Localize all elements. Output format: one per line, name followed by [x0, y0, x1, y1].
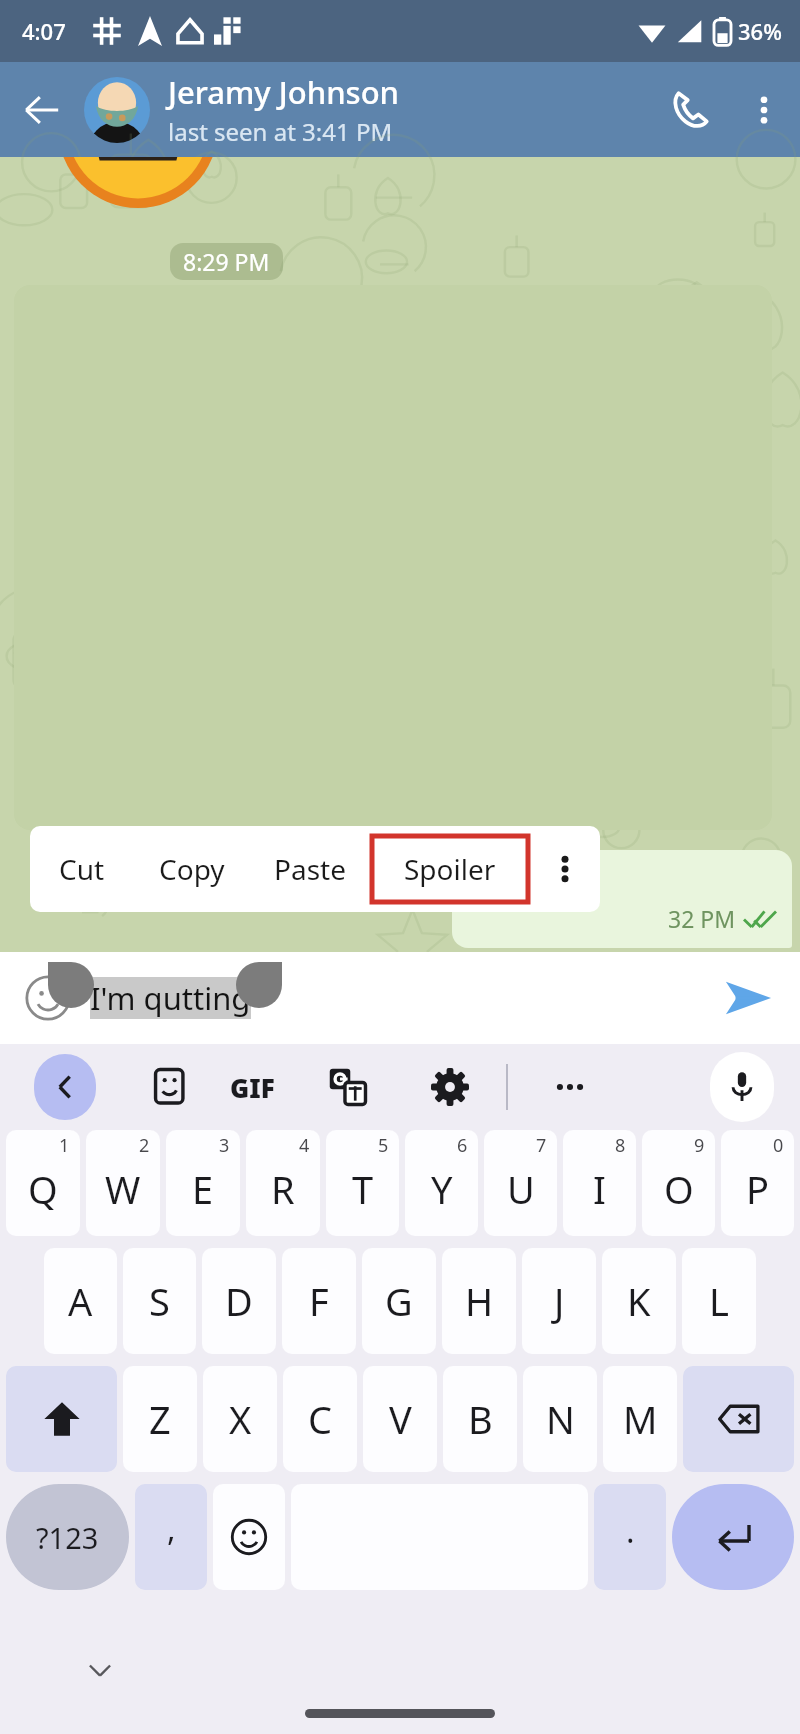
staticText: Jeramy Johnson	[168, 71, 400, 113]
button[interactable]: More	[530, 826, 600, 912]
staticText: 6	[457, 1133, 468, 1158]
staticText: Y	[431, 1163, 453, 1215]
staticText: O	[664, 1163, 694, 1215]
button[interactable]: Q	[6, 1130, 80, 1236]
staticText: L	[709, 1275, 729, 1327]
button[interactable]: Back	[34, 1054, 96, 1120]
button[interactable]: T	[326, 1130, 399, 1236]
button[interactable]: Emoji	[213, 1484, 285, 1590]
button[interactable]: Settings	[418, 1055, 482, 1119]
staticText: Copy	[159, 850, 225, 888]
staticText: Cut	[59, 850, 105, 888]
button[interactable]: G	[362, 1248, 436, 1354]
button[interactable]: D	[202, 1248, 276, 1354]
staticText: J	[554, 1275, 565, 1327]
button[interactable]: Emoji	[20, 970, 76, 1026]
staticText: Paste	[274, 850, 346, 888]
staticText: P	[746, 1163, 769, 1215]
button[interactable]: GIF	[220, 1055, 284, 1119]
staticText: W	[105, 1163, 141, 1215]
staticText: G	[385, 1275, 413, 1327]
button[interactable]: Back	[0, 62, 84, 157]
staticText: T	[352, 1163, 374, 1215]
staticText: M	[623, 1393, 658, 1445]
staticText: 5	[378, 1133, 389, 1158]
staticText: F	[309, 1275, 329, 1327]
staticText: U	[507, 1163, 535, 1215]
button[interactable]: Enter	[672, 1484, 794, 1590]
button[interactable]	[14, 285, 772, 830]
staticText: Q	[28, 1163, 58, 1215]
button[interactable]: Voice input	[710, 1052, 774, 1122]
button[interactable]: Copy	[134, 826, 250, 912]
button[interactable]: Cut	[30, 826, 134, 912]
button[interactable]: More options	[728, 62, 800, 157]
button[interactable]: Shift	[6, 1366, 117, 1472]
staticText: 4:07	[22, 16, 66, 46]
staticText: K	[627, 1275, 651, 1327]
staticText: 3	[219, 1133, 230, 1158]
button[interactable]: 32 PM	[452, 850, 792, 948]
staticText: GIF	[230, 1070, 275, 1105]
button[interactable]: F	[282, 1248, 356, 1354]
button[interactable]: Call	[652, 62, 728, 157]
button[interactable]: Profile photo	[84, 77, 150, 143]
button[interactable]: ,	[135, 1484, 207, 1590]
button[interactable]: Paste	[250, 826, 370, 912]
button[interactable]: K	[602, 1248, 676, 1354]
button[interactable]: More	[538, 1055, 602, 1119]
staticText: I'm qutting	[90, 977, 251, 1019]
staticText: 7	[536, 1133, 547, 1158]
button[interactable]: L	[682, 1248, 756, 1354]
staticText: ?123	[36, 1518, 99, 1557]
button[interactable]: S	[123, 1248, 196, 1354]
staticText: A	[68, 1275, 93, 1327]
button[interactable]: R	[246, 1130, 320, 1236]
button[interactable]: .	[594, 1484, 666, 1590]
button[interactable]: Spoiler	[370, 826, 530, 912]
button[interactable]: W	[86, 1130, 160, 1236]
button[interactable]: I	[563, 1130, 636, 1236]
button[interactable]: P	[721, 1130, 794, 1236]
staticText: Spoiler	[404, 850, 496, 888]
button[interactable]: Send	[716, 966, 780, 1030]
button[interactable]: V	[363, 1366, 437, 1472]
staticText: 32 PM	[668, 903, 736, 934]
button[interactable]: Backspace	[683, 1366, 794, 1472]
button[interactable]: U	[484, 1130, 557, 1236]
staticText: 0	[773, 1133, 784, 1158]
staticText: N	[546, 1393, 575, 1445]
button[interactable]: Stickers	[138, 1055, 202, 1119]
staticText: R	[271, 1163, 295, 1215]
button[interactable]: M	[603, 1366, 677, 1472]
staticText: 1	[59, 1133, 70, 1158]
staticText: C	[308, 1393, 333, 1445]
staticText: Z	[149, 1393, 171, 1445]
button[interactable]: H	[442, 1248, 516, 1354]
staticText: B	[468, 1393, 493, 1445]
button[interactable]: B	[443, 1366, 517, 1472]
button[interactable]: Z	[123, 1366, 197, 1472]
staticText: I	[593, 1163, 606, 1215]
staticText: 9	[694, 1133, 705, 1158]
button[interactable]: Hide keyboard	[76, 1646, 124, 1694]
button[interactable]: Translate	[316, 1055, 380, 1119]
button[interactable]: N	[523, 1366, 597, 1472]
button[interactable]: Y	[405, 1130, 478, 1236]
staticText: E	[192, 1163, 214, 1215]
staticText: S	[149, 1275, 170, 1327]
button[interactable]: C	[283, 1366, 357, 1472]
staticText: 36%	[738, 16, 782, 46]
button[interactable]: X	[203, 1366, 277, 1472]
staticText: 2	[139, 1133, 150, 1158]
staticText: ,	[167, 1507, 176, 1551]
staticText: X	[229, 1393, 252, 1445]
button[interactable]: ?123	[6, 1484, 129, 1590]
button[interactable]: E	[166, 1130, 240, 1236]
button[interactable]: A	[44, 1248, 117, 1354]
button[interactable]: J	[522, 1248, 596, 1354]
button[interactable]: O	[642, 1130, 715, 1236]
staticText: H	[465, 1275, 494, 1327]
staticText: 8:29 PM	[183, 246, 270, 277]
